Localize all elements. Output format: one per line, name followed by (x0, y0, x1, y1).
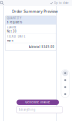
button[interactable]: Move (61, 77, 69, 84)
staticText: Mar 4 (7, 39, 14, 42)
staticText: Ask anything (18, 108, 35, 111)
staticText: Net 30 (7, 30, 17, 33)
staticText: CLAUSE (7, 25, 16, 29)
button[interactable]: Search (0, 0, 10, 6)
button[interactable]: Generate invoice (16, 100, 59, 105)
button[interactable]: QUANTITY (5, 16, 56, 25)
staticText: Order Summary Preview (11, 9, 57, 14)
staticText: 8 registers (7, 21, 22, 24)
staticText: Up to date (54, 1, 69, 5)
staticText: TICKET DATE (7, 35, 25, 38)
button[interactable]: Comment (61, 84, 69, 91)
button[interactable]: TICKET DATE (5, 34, 56, 43)
button[interactable]: Select (61, 70, 69, 77)
staticText: Subtotal $349.00 (29, 45, 55, 49)
staticText: Generate invoice (25, 100, 50, 104)
button[interactable]: More (61, 91, 69, 98)
button[interactable]: CLAUSE (5, 25, 56, 34)
button[interactable]: Ask anything (16, 106, 62, 113)
staticText: QUANTITY (7, 16, 22, 20)
